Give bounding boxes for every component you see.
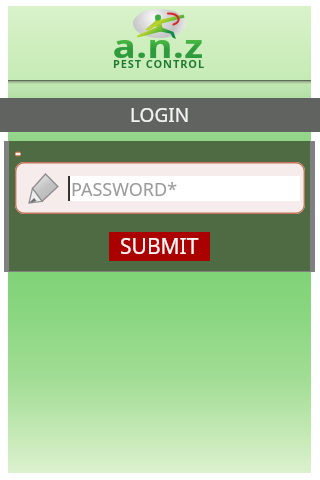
button[interactable]: Edit password: [15, 162, 305, 214]
button[interactable]: LOGIN: [0, 98, 320, 132]
staticText: PASSWORD*: [71, 177, 178, 202]
staticText: SUBMIT: [120, 232, 199, 261]
staticText: PEST CONTROL: [113, 56, 205, 71]
staticText: a.n.z: [113, 23, 204, 68]
other: Edit password: [29, 174, 58, 203]
button[interactable]: SUBMIT: [109, 232, 210, 261]
other: a.n.z Pest Control logo: [8, 6, 309, 81]
staticText: LOGIN: [130, 102, 190, 128]
